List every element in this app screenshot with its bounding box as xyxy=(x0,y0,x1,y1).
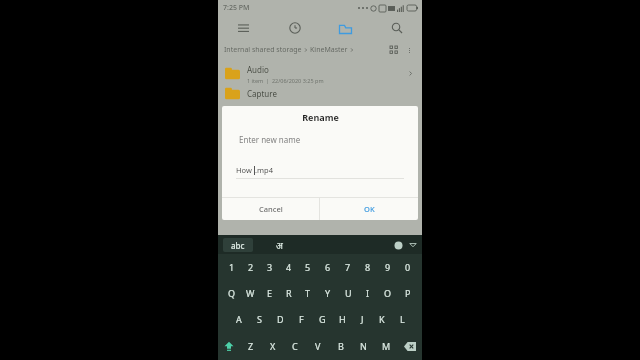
button[interactable]: Help xyxy=(390,237,406,253)
staticText: 2 xyxy=(248,261,254,273)
staticText: K xyxy=(379,313,385,325)
staticText: L xyxy=(400,313,405,325)
staticText: 4 xyxy=(286,261,292,273)
staticText: H xyxy=(339,313,346,325)
button[interactable]: Y xyxy=(318,280,338,306)
button[interactable]: B xyxy=(329,332,352,360)
staticText: D xyxy=(277,313,284,325)
button[interactable]: Shift xyxy=(218,332,240,360)
button[interactable]: Search xyxy=(371,16,422,40)
staticText: Capture xyxy=(247,88,277,99)
button[interactable]: More options xyxy=(402,43,416,57)
button[interactable]: 5 xyxy=(298,254,318,280)
button[interactable]: 1 xyxy=(222,254,241,280)
button[interactable]: KineMaster xyxy=(310,45,348,55)
staticText: 9 xyxy=(385,261,391,273)
staticText: 7 xyxy=(345,261,351,273)
button[interactable]: Recent xyxy=(269,16,320,40)
staticText: Enter new name xyxy=(239,134,301,145)
button[interactable]: Q xyxy=(222,280,241,306)
button[interactable]: V xyxy=(306,332,329,360)
staticText: E xyxy=(267,287,273,299)
button[interactable]: Menu xyxy=(218,16,269,40)
staticText: X xyxy=(270,340,276,352)
button[interactable]: 2 xyxy=(241,254,260,280)
staticText: Z xyxy=(248,340,254,352)
button[interactable]: T xyxy=(298,280,318,306)
button[interactable]: Z xyxy=(240,332,262,360)
staticText: N xyxy=(360,340,367,352)
button[interactable]: W xyxy=(241,280,260,306)
button[interactable]: N xyxy=(352,332,375,360)
button[interactable]: H xyxy=(332,306,352,332)
button[interactable]: 9 xyxy=(378,254,398,280)
button[interactable]: F xyxy=(291,306,312,332)
staticText: R xyxy=(286,287,292,299)
staticText: Y xyxy=(325,287,331,299)
staticText: S xyxy=(257,313,262,325)
button[interactable]: 6 xyxy=(318,254,338,280)
staticText: Audio xyxy=(247,64,269,75)
staticText: U xyxy=(345,287,352,299)
staticText: 8 xyxy=(365,261,371,273)
button[interactable]: J xyxy=(352,306,372,332)
staticText: OK xyxy=(364,204,375,214)
button[interactable]: Files xyxy=(320,16,371,40)
staticText: P xyxy=(405,287,411,299)
staticText: T xyxy=(305,287,311,299)
button[interactable]: Backspace xyxy=(398,332,422,360)
staticText: .mp4 xyxy=(255,165,273,175)
button[interactable]: S xyxy=(249,306,270,332)
staticText: G xyxy=(319,313,326,325)
staticText: J xyxy=(361,313,364,325)
button[interactable]: G xyxy=(312,306,332,332)
button[interactable]: O xyxy=(378,280,398,306)
button[interactable]: R xyxy=(279,280,298,306)
button[interactable]: K xyxy=(372,306,392,332)
button[interactable]: Capture xyxy=(218,87,422,101)
staticText: Rename xyxy=(302,111,339,123)
button[interactable]: 3 xyxy=(260,254,279,280)
staticText: 1 xyxy=(229,261,235,273)
button[interactable]: अ xyxy=(267,238,291,252)
button[interactable]: Cancel xyxy=(222,198,319,220)
staticText: W xyxy=(246,287,255,299)
button[interactable]: 0 xyxy=(398,254,418,280)
staticText: I xyxy=(366,287,370,299)
button[interactable]: I xyxy=(358,280,378,306)
staticText: M xyxy=(382,340,391,352)
staticText: 0 xyxy=(405,261,411,273)
button[interactable]: X xyxy=(262,332,284,360)
button[interactable]: U xyxy=(338,280,358,306)
button[interactable]: P xyxy=(398,280,418,306)
staticText: O xyxy=(384,287,392,299)
staticText: How xyxy=(236,165,254,175)
staticText: F xyxy=(299,313,304,325)
button[interactable]: 8 xyxy=(358,254,378,280)
button[interactable]: A xyxy=(228,306,249,332)
button[interactable]: D xyxy=(270,306,291,332)
button[interactable]: Audio xyxy=(218,60,422,87)
button[interactable]: How xyxy=(236,160,404,179)
button[interactable]: abc xyxy=(223,238,253,252)
staticText: 3 xyxy=(267,261,273,273)
staticText: B xyxy=(338,340,344,352)
button[interactable]: Grid view xyxy=(386,42,402,58)
button[interactable]: C xyxy=(284,332,306,360)
button[interactable]: 4 xyxy=(279,254,298,280)
button[interactable]: L xyxy=(392,306,412,332)
button[interactable]: Hide keyboard xyxy=(406,237,419,253)
button[interactable]: M xyxy=(375,332,398,360)
staticText: 7:25 PM xyxy=(223,3,250,13)
staticText: Cancel xyxy=(259,204,283,214)
button[interactable]: OK xyxy=(320,198,418,220)
staticText: 1 item | 22/06/2020 3:25 pm xyxy=(247,77,324,84)
button[interactable]: Internal shared storage xyxy=(224,45,302,55)
staticText: Q xyxy=(228,287,236,299)
staticText: V xyxy=(315,340,321,352)
staticText: 6 xyxy=(325,261,331,273)
staticText: अ xyxy=(276,239,283,251)
button[interactable]: E xyxy=(260,280,279,306)
button[interactable]: 7 xyxy=(338,254,358,280)
staticText: abc xyxy=(231,240,245,251)
